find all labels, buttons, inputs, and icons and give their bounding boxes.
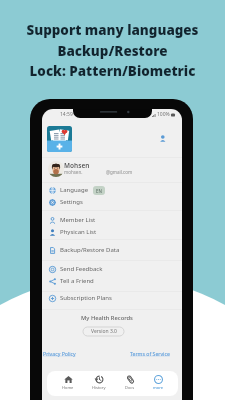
staticText: Docs [125,385,135,390]
staticText: Tell a Friend [60,277,94,285]
button[interactable]: Subscription Plans [49,292,182,304]
staticText: Settings [60,198,83,206]
button[interactable]: Backup/Restore Data [49,244,182,256]
staticText: Backup/Restore Data [60,246,120,254]
staticText: 14:59 [60,111,73,118]
staticText: EN [96,188,102,194]
staticText: Send Feedback [60,265,103,273]
button[interactable]: My Health Records [47,126,72,152]
staticText: Member List [60,216,96,224]
button[interactable]: Physican List [49,226,182,238]
staticText: more [153,385,163,390]
staticText: mohsen. [64,169,83,175]
staticText: Version 3.0 [91,328,117,335]
button[interactable]: Home [59,375,77,390]
button[interactable]: more [150,375,166,390]
button[interactable]: Tell a Friend [49,275,182,287]
button[interactable]: Docs [122,375,138,390]
staticText: Mohsen [64,161,90,170]
staticText: 100% [157,111,170,118]
staticText: Subscription Plans [60,294,112,302]
button[interactable]: Add account [156,131,170,145]
staticText: Support many languages Backup/Restore Lo… [0,21,225,80]
button[interactable]: Terms of Service [130,350,170,357]
staticText: Language [60,186,89,194]
button[interactable]: Privacy Policy [43,350,76,357]
staticText: Physican List [60,228,97,236]
button[interactable]: History [89,375,109,390]
button[interactable]: Send Feedback [49,263,182,275]
button[interactable]: Mohsen [42,158,182,180]
staticText: History [92,385,106,390]
staticText: Home [62,385,74,390]
button[interactable]: Language [49,184,182,196]
button[interactable]: Member List [49,214,182,226]
staticText: @gmail.com [106,169,133,175]
button[interactable]: Settings [49,196,182,208]
staticText: My Health Records [81,314,133,322]
